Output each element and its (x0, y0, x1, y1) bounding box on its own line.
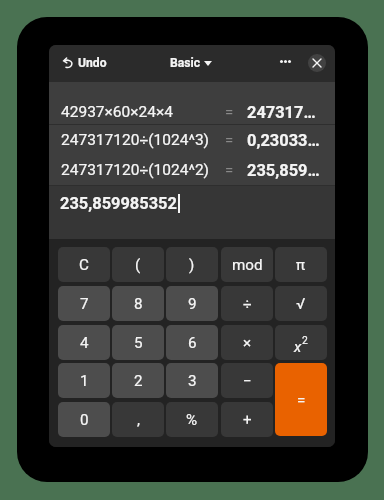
staticText: = (225, 103, 234, 121)
button[interactable]: C (58, 247, 110, 282)
button[interactable]: Basic (166, 51, 216, 75)
button[interactable]: 2 (112, 363, 164, 398)
staticText: × (243, 334, 252, 352)
button[interactable]: mod (221, 247, 273, 282)
staticText: 42937×60×24×4 (61, 103, 173, 121)
button[interactable]: ) (166, 247, 218, 282)
staticText: + (243, 411, 252, 429)
staticText: 7 (80, 295, 89, 313)
button[interactable]: π (275, 247, 327, 282)
staticText: ) (189, 256, 195, 274)
staticText: mod (232, 256, 263, 274)
button[interactable]: + (221, 402, 273, 437)
button[interactable]: 42937×60×24×4 (49, 82, 335, 125)
button[interactable]: 247317120÷(1024^2) (49, 155, 335, 186)
staticText: 235,859985352 (60, 194, 177, 213)
staticText: π (296, 256, 306, 274)
button[interactable]: 235,859985352 (49, 190, 335, 216)
staticText: 247317120÷(1024^3) (61, 131, 209, 149)
button[interactable]: = (275, 363, 327, 436)
button[interactable]: 7 (58, 286, 110, 321)
staticText: 2 (134, 372, 143, 390)
staticText: 0,23033… (247, 131, 320, 150)
staticText: = (225, 161, 234, 179)
staticText: Undo (78, 56, 107, 70)
button[interactable]: − (221, 363, 273, 398)
button[interactable]: More options (275, 51, 295, 71)
button[interactable]: 5 (112, 325, 164, 360)
staticText: 4 (80, 334, 89, 352)
button[interactable]: √ (275, 286, 327, 321)
button[interactable]: , (112, 402, 164, 437)
staticText: % (186, 411, 198, 429)
staticText: √ (296, 295, 306, 313)
staticText: 8 (134, 295, 143, 313)
button[interactable]: % (166, 402, 218, 437)
button[interactable]: x (275, 325, 327, 360)
staticText: 3 (188, 372, 197, 390)
staticText: = (297, 391, 306, 409)
staticText: = (225, 131, 234, 149)
button[interactable]: 0 (58, 402, 110, 437)
staticText: 6 (188, 334, 197, 352)
staticText: C (79, 256, 89, 274)
button[interactable]: 1 (58, 363, 110, 398)
staticText: Basic (170, 56, 201, 70)
button[interactable]: 4 (58, 325, 110, 360)
staticText: 1 (80, 372, 89, 390)
staticText: 235,859… (247, 161, 320, 180)
button[interactable]: 247317120÷(1024^3) (49, 125, 335, 156)
button[interactable]: 3 (166, 363, 218, 398)
button[interactable]: ÷ (221, 286, 273, 321)
button[interactable]: 8 (112, 286, 164, 321)
staticText: − (243, 372, 252, 390)
button[interactable]: ( (112, 247, 164, 282)
staticText: ÷ (243, 295, 252, 313)
staticText: ( (135, 256, 141, 274)
staticText: , (137, 411, 140, 429)
button[interactable]: × (221, 325, 273, 360)
staticText: 9 (188, 295, 197, 313)
staticText: 0 (80, 411, 89, 429)
staticText: 247317… (247, 103, 316, 122)
staticText: 5 (134, 334, 143, 352)
staticText: 247317120÷(1024^2) (61, 161, 209, 179)
button[interactable]: Close (308, 54, 326, 72)
staticText: 2 (302, 334, 308, 346)
button[interactable]: Undo (58, 51, 111, 75)
button[interactable]: 6 (166, 325, 218, 360)
button[interactable]: 9 (166, 286, 218, 321)
staticText: x (294, 338, 302, 356)
